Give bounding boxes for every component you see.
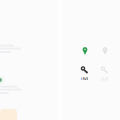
staticText: LAST: [89, 70, 120, 88]
staticText: LIVE: [70, 70, 98, 88]
button[interactable]: LAST: [95, 44, 115, 82]
button[interactable]: LIVE: [75, 44, 95, 82]
